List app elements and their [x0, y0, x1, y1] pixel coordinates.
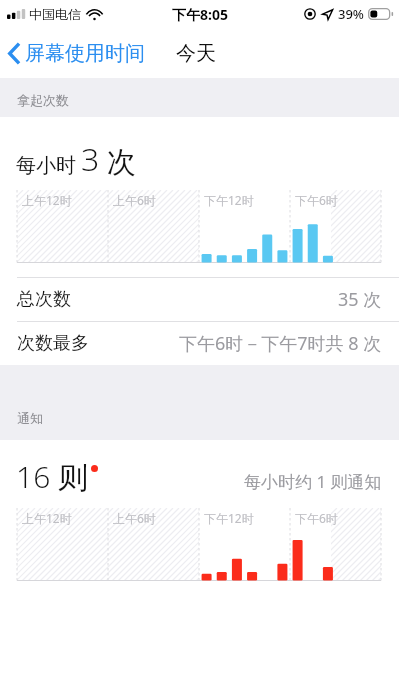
- staticText: 中国电信: [29, 6, 81, 22]
- staticText: 总次数: [17, 288, 71, 311]
- staticText: 次: [107, 144, 136, 181]
- button[interactable]: Back: [8, 41, 145, 66]
- staticText: 每小时: [16, 153, 76, 178]
- other: Back: [8, 42, 21, 65]
- button[interactable]: 总次数: [0, 278, 399, 321]
- staticText: 35 次: [338, 287, 382, 312]
- staticText: 今天: [176, 41, 216, 66]
- staticText: 上午12时: [22, 192, 72, 208]
- staticText: 上午12时: [22, 510, 72, 526]
- staticText: 下午6时－下午7时共 8 次: [179, 331, 382, 356]
- staticText: 下午6时: [295, 192, 338, 208]
- staticText: 每小时约 1 则通知: [244, 470, 382, 493]
- staticText: 16 则: [16, 456, 89, 497]
- staticText: 下午12时: [204, 510, 254, 526]
- staticText: 通知: [17, 410, 43, 426]
- staticText: 39%: [338, 5, 364, 23]
- staticText: 屏幕使用时间: [25, 41, 145, 66]
- staticText: 下午12时: [204, 192, 254, 208]
- staticText: 下午8:05: [172, 5, 228, 24]
- staticText: 下午6时: [295, 510, 338, 526]
- staticText: 3: [81, 137, 100, 181]
- staticText: 上午6时: [113, 192, 156, 208]
- staticText: 拿起次数: [17, 92, 69, 108]
- staticText: 次数最多: [17, 332, 89, 355]
- button[interactable]: 次数最多: [0, 322, 399, 365]
- staticText: 上午6时: [113, 510, 156, 526]
